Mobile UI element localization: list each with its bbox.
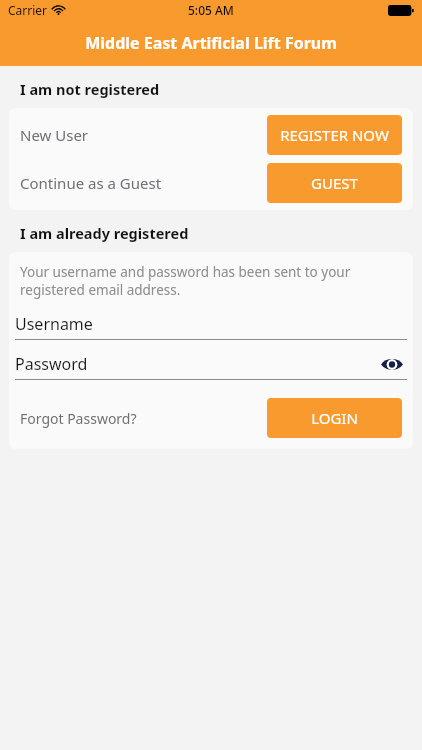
button[interactable]: Password [15, 352, 407, 376]
staticText: Forgot Password? [20, 409, 137, 428]
staticText: Carrier [8, 2, 48, 18]
staticText: 5:05 AM [188, 2, 234, 18]
button[interactable]: Forgot Password? [20, 409, 267, 428]
staticText: Username [15, 313, 407, 335]
button[interactable]: LOGIN [267, 398, 402, 438]
staticText: LOGIN [311, 408, 358, 428]
button[interactable]: Username [15, 312, 407, 336]
staticText: I am already registered [20, 223, 189, 243]
staticText: REGISTER NOW [280, 125, 389, 145]
staticText: GUEST [311, 173, 358, 193]
button[interactable]: GUEST [267, 163, 402, 203]
staticText: Middle East Artificial Lift Forum [85, 32, 337, 54]
staticText: Password [15, 353, 377, 375]
button[interactable]: Show password [377, 352, 407, 376]
staticText: New User [20, 125, 267, 145]
staticText: Your username and password has been sent… [20, 263, 402, 299]
staticText: Continue as a Guest [20, 173, 267, 193]
button[interactable]: REGISTER NOW [267, 115, 402, 155]
staticText: I am not registered [20, 79, 160, 99]
